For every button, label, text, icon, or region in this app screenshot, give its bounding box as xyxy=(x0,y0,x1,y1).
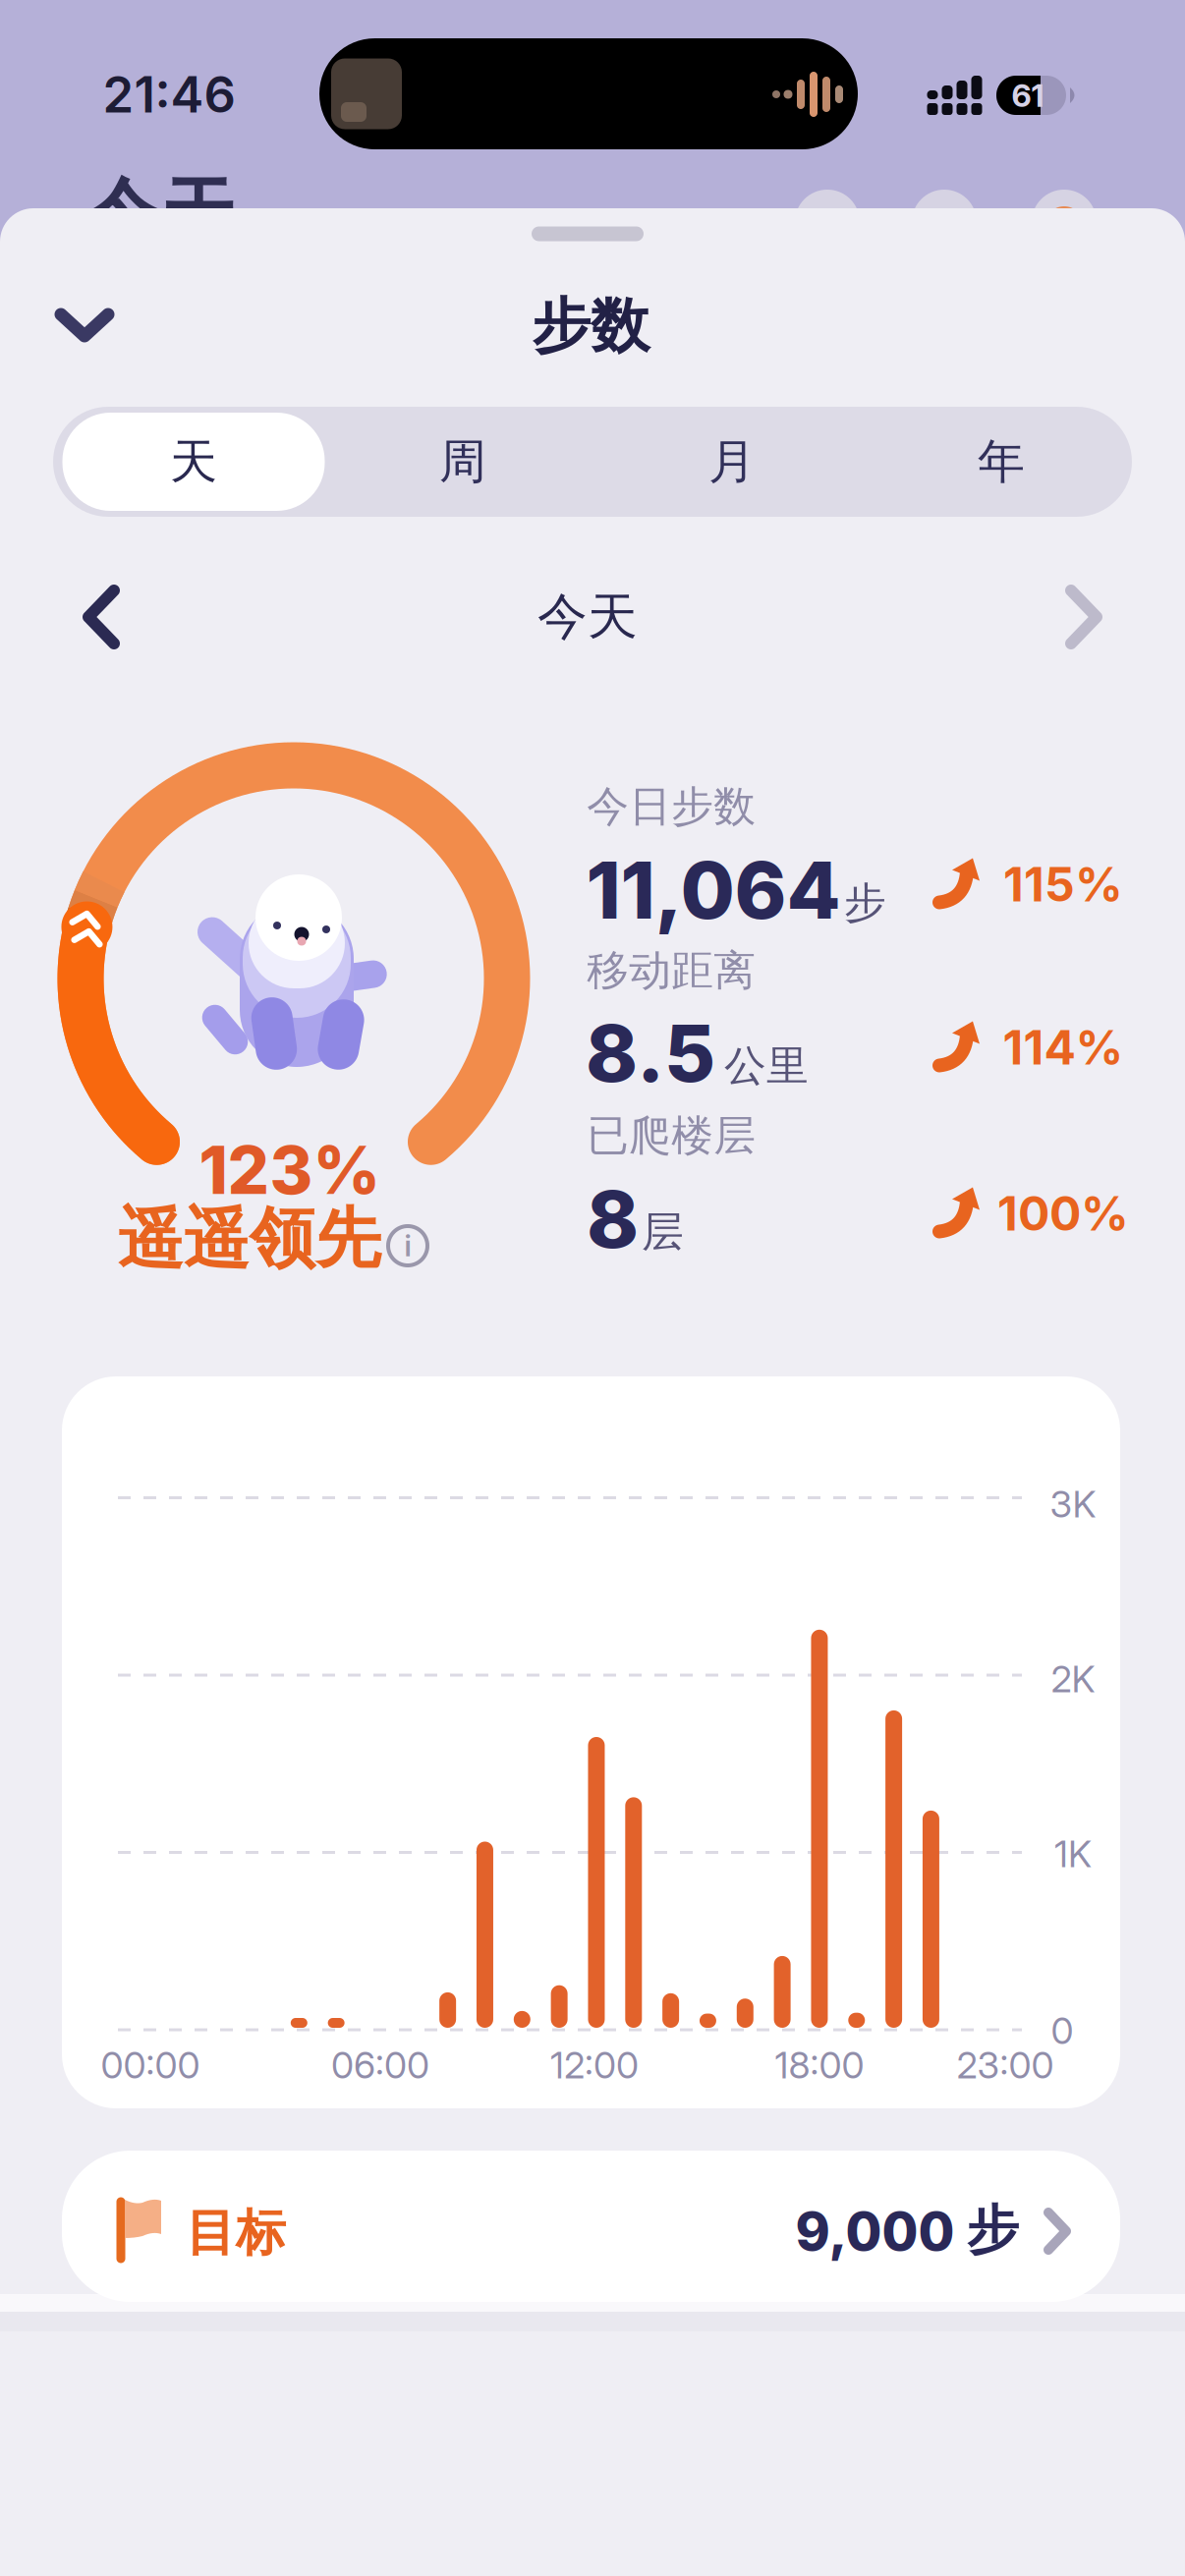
button[interactable]: 后一天 xyxy=(1057,577,1110,657)
staticText: 23:00 xyxy=(957,2043,1054,2087)
staticText: 00:00 xyxy=(101,2043,200,2087)
button[interactable]: 前一天 xyxy=(75,577,128,657)
staticText: 今天 xyxy=(85,168,236,261)
staticText: 06:00 xyxy=(331,2043,429,2087)
staticText: 61 xyxy=(1012,76,1044,114)
staticText: 21:46 xyxy=(103,64,235,124)
staticText: 公里 xyxy=(724,1040,809,1092)
staticText: 已爬楼层 xyxy=(587,1110,756,1161)
staticText: 步数 xyxy=(532,290,649,362)
staticText: 天 xyxy=(170,433,217,491)
staticText: 遥遥领先 xyxy=(118,1199,381,1279)
staticText: 100% xyxy=(997,1185,1129,1242)
staticText: 月 xyxy=(708,433,756,491)
staticText: 目标 xyxy=(186,2203,286,2264)
button[interactable]: 天 xyxy=(62,413,325,511)
button[interactable]: 年 xyxy=(870,413,1132,511)
button[interactable]: 信息 xyxy=(388,1226,427,1265)
staticText: 11,064 xyxy=(586,843,841,938)
button[interactable]: 关闭 xyxy=(47,301,122,350)
staticText: 123% xyxy=(199,1131,381,1210)
staticText: 2K xyxy=(1051,1657,1095,1701)
staticText: 114% xyxy=(1003,1019,1124,1076)
staticText: 9,000 步 xyxy=(795,2197,1018,2263)
staticText: 0 xyxy=(1051,2009,1073,2053)
staticText: 今天 xyxy=(537,586,638,648)
staticText: 移动距离 xyxy=(587,945,756,996)
button[interactable]: 周 xyxy=(332,413,594,511)
staticText: 3K xyxy=(1050,1482,1096,1526)
staticText: 层 xyxy=(642,1206,684,1258)
staticText: 年 xyxy=(978,433,1025,491)
button[interactable]: 目标 xyxy=(62,2151,1120,2302)
staticText: 1K xyxy=(1054,1832,1092,1876)
staticText: 8.5 xyxy=(586,1006,715,1101)
staticText: 步 xyxy=(844,877,886,929)
staticText: 18:00 xyxy=(775,2043,864,2087)
staticText: 今日步数 xyxy=(587,781,756,832)
staticText: 8 xyxy=(587,1172,639,1267)
button[interactable]: 月 xyxy=(601,413,863,511)
staticText: 周 xyxy=(439,433,486,491)
staticText: 115% xyxy=(1003,856,1123,913)
staticText: 12:00 xyxy=(550,2043,639,2087)
staticText: i xyxy=(404,1228,411,1263)
